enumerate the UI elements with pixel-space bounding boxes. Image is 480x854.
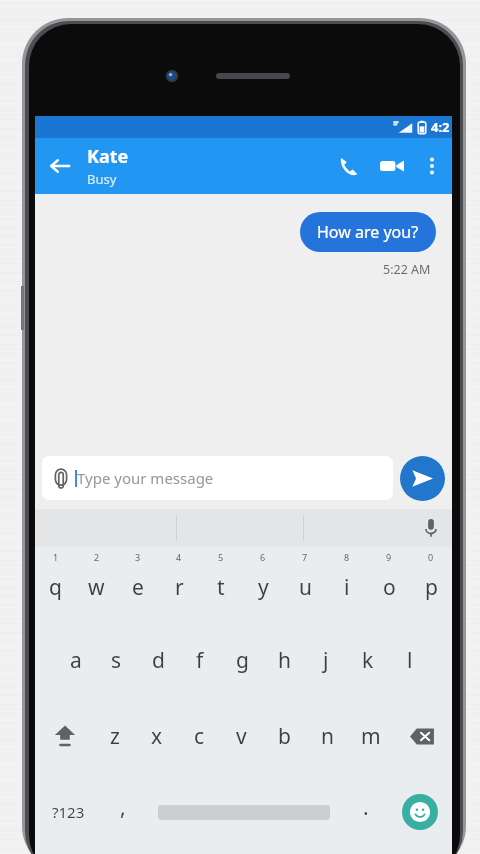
staticText: 3 [135, 551, 141, 563]
staticText: 5:22 AM [383, 261, 431, 278]
staticText: e [132, 573, 144, 602]
staticText: o [383, 573, 396, 602]
staticText: b [278, 722, 291, 751]
staticText: Kate [87, 144, 129, 169]
staticText: d [152, 646, 165, 675]
staticText: w [88, 573, 105, 602]
button[interactable]: l [389, 622, 431, 698]
button[interactable]: g [221, 622, 263, 698]
staticText: l [407, 646, 413, 675]
staticText: 4:2 [431, 118, 450, 136]
button[interactable]: s [96, 622, 137, 698]
button[interactable]: h [263, 622, 305, 698]
staticText: t [217, 573, 225, 602]
button[interactable]: 9 [368, 547, 410, 622]
staticText: p [425, 573, 438, 602]
staticText: s [111, 646, 122, 675]
button[interactable]: 0 [410, 547, 452, 622]
button[interactable]: 8 [326, 547, 368, 622]
staticText: a [70, 646, 82, 675]
staticText: j [323, 646, 329, 675]
staticText: 8 [344, 551, 350, 563]
staticText: Type your message [77, 468, 214, 488]
button[interactable]: How are you? [300, 212, 436, 252]
button[interactable]: f [179, 622, 221, 698]
button[interactable]: Back [39, 145, 81, 187]
button[interactable]: z [94, 698, 136, 774]
staticText: g [236, 646, 249, 675]
button[interactable]: 2 [76, 547, 117, 622]
staticText: , [120, 793, 126, 822]
staticText: x [151, 722, 163, 751]
button[interactable]: ?123 [35, 774, 101, 850]
button[interactable]: k [347, 622, 389, 698]
staticText: 1 [53, 551, 59, 563]
staticText: Busy [87, 170, 117, 188]
button[interactable]: 5 [200, 547, 242, 622]
staticText: h [278, 646, 291, 675]
button[interactable]: c [178, 698, 220, 774]
button[interactable]: 4 [158, 547, 200, 622]
staticText: 4 [176, 551, 182, 563]
staticText: ?123 [52, 802, 85, 822]
button[interactable]: a [55, 622, 96, 698]
button[interactable]: Send [400, 456, 445, 501]
staticText: n [321, 722, 334, 751]
button[interactable]: 6 [242, 547, 284, 622]
button[interactable]: Comma [101, 774, 144, 850]
button[interactable]: Shift [35, 698, 94, 774]
staticText: v [236, 722, 247, 751]
button[interactable]: 3 [117, 547, 158, 622]
staticText: f [196, 646, 204, 675]
staticText: 6 [260, 551, 266, 563]
button[interactable]: Backspace [392, 698, 452, 774]
button[interactable]: Video call [370, 144, 414, 188]
button[interactable]: Period [344, 774, 387, 850]
staticText: m [361, 722, 381, 751]
button[interactable]: d [137, 622, 179, 698]
button[interactable]: More options [414, 148, 450, 184]
staticText: 2 [94, 551, 100, 563]
staticText: How are you? [317, 221, 419, 243]
button[interactable]: Kate [87, 144, 129, 188]
button[interactable]: n [306, 698, 349, 774]
staticText: q [49, 573, 62, 602]
staticText: r [175, 573, 184, 602]
button[interactable]: m [349, 698, 392, 774]
staticText: 0 [428, 551, 434, 563]
staticText: . [363, 793, 369, 822]
staticText: z [110, 722, 120, 751]
button[interactable]: x [136, 698, 178, 774]
staticText: y [258, 573, 269, 602]
staticText: 9 [386, 551, 392, 563]
staticText: k [362, 646, 374, 675]
button[interactable]: Call [326, 144, 370, 188]
button[interactable]: Emoji [387, 774, 452, 850]
staticText: u [299, 573, 312, 602]
button[interactable]: 7 [284, 547, 326, 622]
button[interactable]: Voice input [416, 513, 446, 543]
button[interactable]: b [263, 698, 306, 774]
staticText: 7 [302, 551, 308, 563]
button[interactable]: v [220, 698, 263, 774]
staticText: c [194, 722, 205, 751]
button[interactable]: Space [144, 774, 344, 850]
button[interactable]: j [305, 622, 347, 698]
staticText: i [344, 573, 350, 602]
staticText: 5 [218, 551, 224, 563]
button[interactable]: Type your message [42, 456, 393, 500]
button[interactable]: 1 [35, 547, 76, 622]
